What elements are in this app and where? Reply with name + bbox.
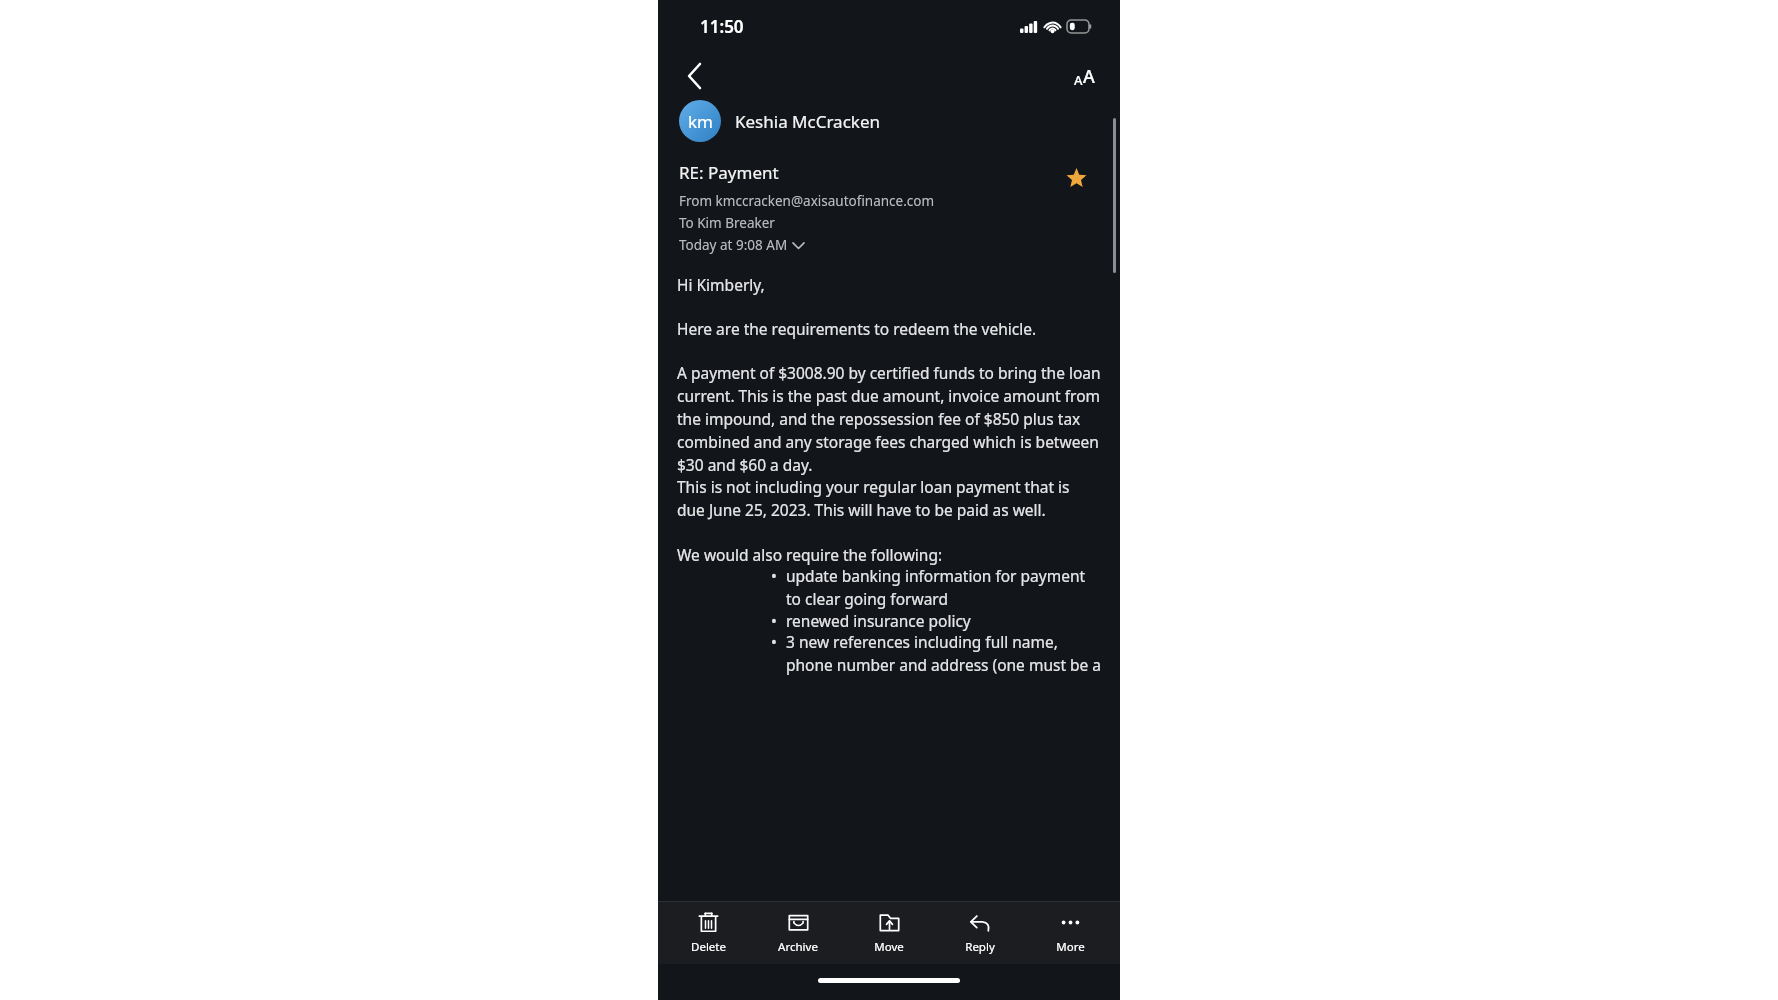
staticText: Keshia McCracken [735, 110, 880, 133]
button[interactable]: Move [848, 902, 930, 964]
staticText: Reply [965, 939, 995, 955]
staticText: More [1056, 939, 1085, 955]
staticText: From kmccracken@axisautofinance.com [679, 192, 935, 210]
button[interactable]: Archive [757, 902, 839, 964]
button[interactable]: Text size [1062, 54, 1106, 98]
staticText: renewed insurance policy [786, 610, 971, 631]
staticText: Today at 9:08 AM [679, 236, 788, 254]
staticText: • [771, 631, 777, 652]
button[interactable]: Today at 9:08 AM [679, 236, 804, 254]
staticText: 3 new references including full name, ph… [786, 631, 1101, 676]
staticText: 11:50 [700, 15, 744, 38]
staticText: To Kim Breaker [679, 214, 775, 232]
staticText: • [771, 565, 777, 586]
staticText: update banking information for payment t… [786, 565, 1101, 610]
staticText: • [771, 610, 777, 631]
staticText: km [688, 110, 713, 133]
button[interactable]: Delete [667, 902, 749, 964]
button[interactable]: Reply [939, 902, 1021, 964]
button[interactable]: Flag [1061, 163, 1091, 193]
button[interactable]: More [1029, 902, 1111, 964]
staticText: A [1083, 64, 1095, 89]
staticText: This is not including your regular loan … [677, 476, 1101, 521]
staticText: Here are the requirements to redeem the … [677, 318, 1037, 339]
staticText: RE: Payment [679, 161, 779, 184]
button[interactable]: Back [672, 54, 716, 98]
staticText: A [1074, 71, 1083, 89]
staticText: Archive [778, 939, 818, 955]
staticText: Hi Kimberly, [677, 274, 765, 295]
staticText: We would also require the following: [677, 544, 943, 565]
staticText: Move [874, 939, 904, 955]
button[interactable]: Keshia McCracken avatar [679, 100, 721, 142]
staticText: A payment of $3008.90 by certified funds… [677, 362, 1101, 476]
staticText: Delete [691, 939, 726, 955]
